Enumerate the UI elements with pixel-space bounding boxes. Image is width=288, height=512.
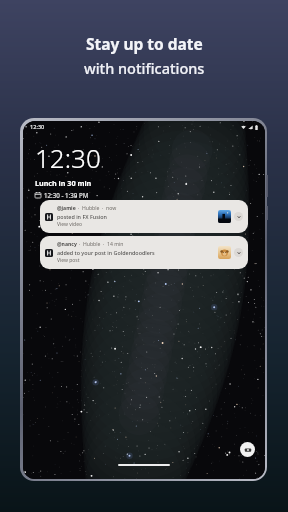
button[interactable]: @jamie	[40, 200, 248, 233]
button[interactable]: @nancy	[40, 236, 248, 269]
staticText: 12:30 - 1:30 PM	[44, 191, 89, 199]
button[interactable]: Camera	[240, 442, 255, 457]
staticText: Stay up to date	[86, 33, 203, 54]
staticText: Lunch in 30 min	[35, 178, 92, 188]
staticText: added to your post in Goldendoodlers	[57, 249, 155, 256]
staticText: 12:30	[35, 140, 101, 175]
staticText: ·	[79, 241, 81, 248]
staticText: ·	[78, 205, 80, 212]
staticText: posted in FX Fusion	[57, 213, 107, 220]
staticText: @nancy	[57, 241, 77, 248]
staticText: Hubble · now	[82, 205, 117, 212]
staticText: @jamie	[57, 205, 76, 212]
button[interactable]: Expand notification	[234, 248, 243, 257]
button[interactable]: Expand notification	[234, 212, 243, 221]
staticText: 12:30	[30, 123, 45, 131]
staticText: Hubble · 14 min	[83, 241, 124, 248]
staticText: with notifications	[84, 58, 205, 78]
staticText: View post	[57, 257, 80, 264]
staticText: View video	[57, 221, 82, 228]
